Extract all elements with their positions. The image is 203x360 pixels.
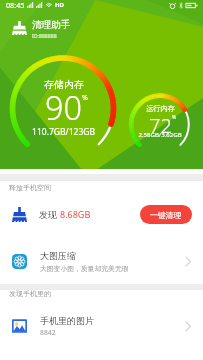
staticText: ID:888888 (32, 32, 57, 39)
staticText: 一键清理 (150, 210, 182, 220)
staticText: 运行内存 (146, 104, 175, 113)
staticText: 8.68GB (60, 208, 91, 220)
staticText: 发现 (39, 208, 60, 220)
button[interactable] (0, 245, 203, 285)
staticText: 08:45 (6, 0, 25, 10)
staticText: 90 (45, 85, 83, 129)
button[interactable]: 一键清理 (140, 205, 192, 224)
staticText: 发现手机里的 (9, 289, 51, 298)
staticText: 2.58GB/3.62GB (138, 130, 182, 138)
staticText: 110.7GB/123GB (32, 126, 95, 138)
staticText: 大图变小图，质量却完美无瑕 (40, 264, 129, 273)
staticText: 存储内存 (44, 78, 84, 91)
staticText: 释放手机空间 (9, 183, 51, 192)
staticText: 大图压缩 (40, 250, 76, 261)
staticText: 手机里的图片 (40, 315, 94, 326)
staticText: 72 (149, 112, 172, 139)
staticText: % (82, 93, 88, 103)
staticText: HD (55, 1, 64, 9)
button[interactable] (0, 310, 203, 350)
staticText: 8842 (40, 328, 56, 337)
button[interactable]: 发现 (0, 196, 203, 232)
staticText: % (172, 114, 177, 121)
staticText: 清理助手 (32, 19, 71, 31)
